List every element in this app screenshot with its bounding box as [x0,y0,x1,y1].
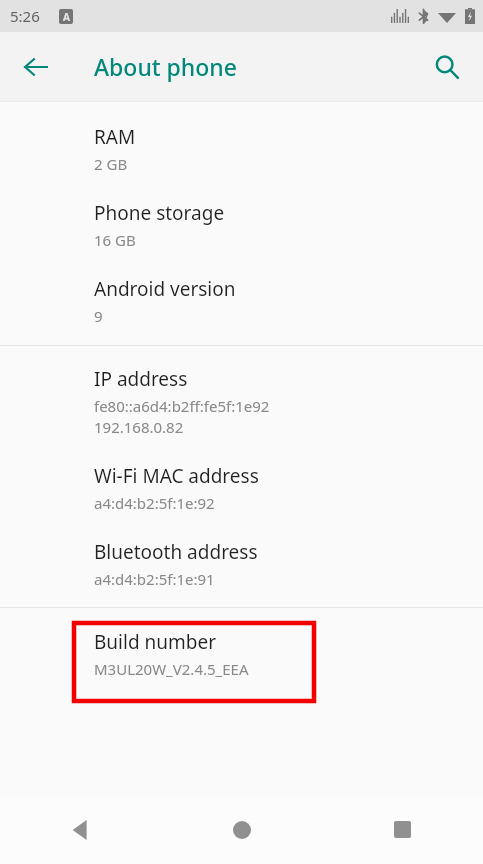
staticText: a4:d4:b2:5f:1e:91 [94,569,215,589]
button[interactable]: Bluetooth address [0,526,483,602]
staticText: M3UL20W_V2.4.5_EEA [94,659,249,679]
button[interactable]: Wi-Fi MAC address [0,450,483,526]
staticText: a4:d4:b2:5f:1e:92 [94,493,215,513]
staticText: 16 GB [94,230,136,250]
staticText: Phone storage [94,200,225,226]
staticText: 192.168.0.82 [94,417,184,437]
staticText: Android version [94,276,236,302]
button[interactable]: Search [423,43,471,91]
staticText: 5:26 [10,6,40,26]
button[interactable]: Home [161,795,322,864]
button[interactable]: IP address [0,353,483,450]
staticText: Wi-Fi MAC address [94,463,259,489]
button[interactable]: Android version [0,263,483,339]
staticText: RAM [94,124,136,150]
staticText: Build number [94,629,217,655]
staticText: IP address [94,366,188,392]
button[interactable]: Back [0,795,161,864]
staticText: 9 [94,306,103,326]
button[interactable]: Recent apps [322,795,483,864]
staticText: A [63,10,70,24]
button[interactable]: RAM [0,111,483,187]
staticText: 2 GB [94,154,128,174]
button[interactable]: Back [12,43,60,91]
staticText: About phone [94,51,237,82]
button[interactable]: Build number [0,608,483,701]
button[interactable]: Phone storage [0,187,483,263]
staticText: fe80::a6d4:b2ff:fe5f:1e92 [94,396,270,416]
staticText: Bluetooth address [94,539,258,565]
